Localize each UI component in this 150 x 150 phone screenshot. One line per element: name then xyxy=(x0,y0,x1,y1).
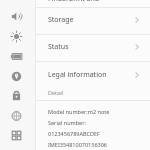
staticText: Storage xyxy=(48,15,74,25)
staticText: IMEI354810070156306 xyxy=(48,141,107,148)
button[interactable]: Storage xyxy=(36,8,150,34)
other: Settings categories xyxy=(0,0,35,150)
button[interactable]: Status xyxy=(36,35,150,61)
button[interactable]: Fingerprint and xyxy=(36,0,150,7)
staticText: Model number:m2 note xyxy=(48,108,110,115)
staticText: Status xyxy=(48,42,69,52)
staticText: Serial number: xyxy=(48,119,86,126)
button[interactable]: Legal information xyxy=(36,62,150,89)
staticText: Detail xyxy=(48,89,64,96)
staticText: 0123456789ABCDEF xyxy=(48,130,100,137)
staticText: Legal information xyxy=(48,70,107,80)
staticText: Fingerprint and xyxy=(48,0,100,1)
